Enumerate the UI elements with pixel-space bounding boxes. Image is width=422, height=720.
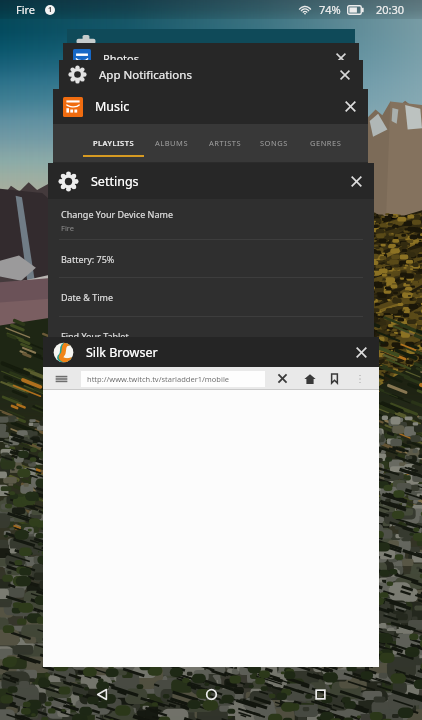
staticText: Silk Browser	[86, 344, 158, 361]
staticText: 20:30	[376, 2, 405, 17]
button[interactable]: PLAYLISTS	[83, 124, 144, 162]
staticText: Music	[95, 98, 130, 115]
button[interactable]: App Notifications	[59, 60, 363, 89]
button[interactable]: Silk Browser	[43, 337, 379, 367]
button[interactable]: Recents	[297, 671, 343, 717]
staticText: ALBUMS	[155, 138, 188, 148]
staticText: App Notifications	[99, 67, 192, 83]
button[interactable]: Menu	[50, 367, 72, 390]
staticText: 1	[48, 5, 53, 15]
button[interactable]: Bookmarks	[323, 367, 345, 390]
button[interactable]: Back	[79, 671, 125, 717]
button[interactable]: Change Your Device Name	[48, 199, 374, 240]
staticText: Date & Time	[61, 291, 114, 303]
staticText: Find Your Tablet	[61, 330, 129, 340]
button[interactable]: Stop	[271, 367, 293, 390]
staticText: Photos	[103, 51, 140, 66]
staticText: SONGS	[260, 138, 288, 148]
staticText: Change Your Device Name	[61, 208, 173, 220]
button[interactable]: http://www.twitch.tv/starladder1/mobile	[81, 371, 265, 387]
staticText: ARTISTS	[209, 138, 242, 148]
button[interactable]: Date & Time	[48, 278, 374, 317]
button[interactable]: Find Your Tablet	[48, 317, 374, 340]
button[interactable]: Battery: 75%	[48, 240, 374, 278]
button[interactable]: GENRES	[301, 124, 351, 162]
button[interactable]: Music	[53, 89, 368, 124]
button[interactable]: Home	[188, 671, 234, 717]
staticText: GENRES	[310, 138, 342, 148]
staticText: PLAYLISTS	[93, 138, 135, 148]
button[interactable]: Photos	[63, 43, 359, 73]
staticText: Fire	[61, 223, 75, 233]
staticText: Settings	[91, 173, 139, 190]
button[interactable]: SONGS	[252, 124, 295, 162]
button[interactable]: Home	[299, 367, 321, 390]
button[interactable]: ARTISTS	[201, 124, 250, 162]
button[interactable]: ALBUMS	[146, 124, 196, 162]
button[interactable]: Settings	[48, 163, 374, 199]
staticText: Fire	[16, 2, 36, 17]
staticText: 74%	[319, 2, 341, 17]
staticText: Battery: 75%	[61, 253, 115, 265]
staticText: http://www.twitch.tv/starladder1/mobile	[87, 374, 230, 384]
button[interactable]: More options	[349, 367, 371, 390]
